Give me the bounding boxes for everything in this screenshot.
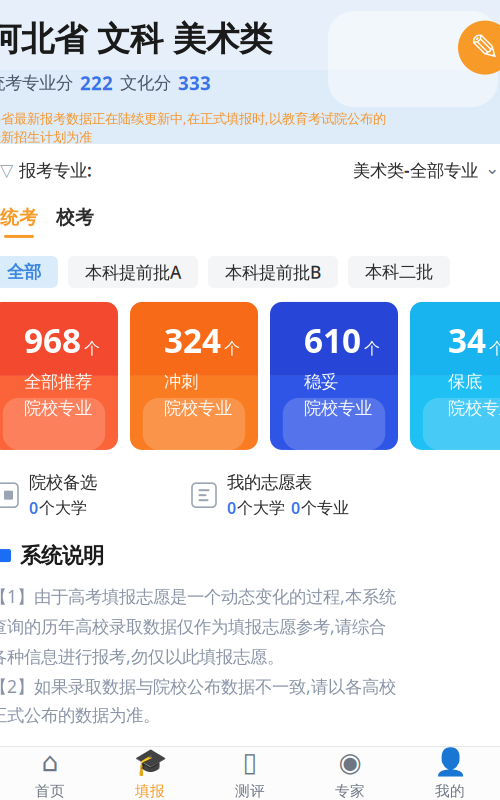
button[interactable]: 我的志愿表 [192,472,432,518]
staticText: 全部推荐 [24,371,92,392]
staticText: ⌂ [41,747,58,777]
staticText: 测评 [235,782,265,800]
staticText: 本科提前批A [85,260,181,283]
staticText: 系统说明 [20,542,104,569]
staticText: 本科二批 [365,261,433,283]
staticText: 院校备选 [29,472,97,493]
button[interactable]: 统考 [0,206,38,238]
button[interactable]: 全部 [0,256,58,288]
staticText: ◉ [338,747,361,777]
button[interactable]: 👤 [400,748,500,798]
button[interactable]: ⌂ [0,748,100,798]
staticText: 个 [84,338,100,358]
staticText: 我的 [435,782,465,800]
staticText: 统考 [0,206,38,229]
staticText: 968 [24,318,81,362]
staticText: 个 [224,338,240,358]
button[interactable]: 校考 [56,206,94,238]
staticText: 222 [80,70,113,95]
button[interactable]: 610 [270,302,398,450]
staticText: 专家 [335,782,365,800]
staticText: 333 [178,70,211,95]
button[interactable]: ▽ [0,144,500,196]
button[interactable]: ◉ [300,748,400,798]
staticText: 稳妥 [304,371,338,392]
staticText: 首页 [35,782,65,800]
staticText: 全部 [7,261,41,283]
staticText: 河北省 文科 美术类 [0,19,272,59]
staticText: 【1】由于高考填报志愿是一个动态变化的过程,本系统 [0,585,396,608]
staticText: 最新招生计划为准 [0,129,92,145]
button[interactable]: 编辑 [458,21,500,75]
staticText: 报考专业: [19,158,92,181]
staticText: 各省最新报考数据正在陆续更新中,在正式填报时,以教育考试院公布的 [0,109,386,127]
button[interactable]: 🎓 [100,748,200,798]
staticText: 正式公布的数据为准。 [0,705,160,726]
staticText: 🎓 [133,747,166,777]
staticText: 各种信息进行报考,勿仅以此填报志愿。 [0,645,284,668]
staticText: ▯ [242,747,257,777]
staticText: 个大学 [39,498,87,518]
staticText: 院校专业 [164,397,232,419]
staticText: ⌄ [485,158,500,178]
staticText: 院校专业 [448,397,500,419]
staticText: 👤 [433,747,466,777]
button[interactable]: 院校备选 [0,472,192,518]
button[interactable]: 本科提前批A [68,256,198,288]
staticText: ✎ [470,27,500,68]
staticText: 填报 [135,782,165,800]
button[interactable]: 34 [410,302,500,450]
staticText: 文化分 [120,72,171,94]
staticText: 0 [29,497,38,518]
staticText: 610 [304,318,361,362]
staticText: 保底 [448,371,482,392]
staticText: 院校专业 [304,397,372,419]
staticText: 我的志愿表 [227,472,312,493]
staticText: 个 [489,338,500,358]
staticText: 【2】如果录取数据与院校公布数据不一致,请以各高校 [0,675,396,698]
staticText: 校考 [56,206,94,229]
staticText: 324 [164,318,221,362]
staticText: 0 [227,497,236,518]
staticText: 0 [291,497,300,518]
staticText: 冲刺 [164,371,198,392]
staticText: 院校专业 [24,397,92,419]
staticText: 个大学 [237,498,290,518]
staticText: 34 [448,318,486,362]
staticText: 个专业 [301,498,349,518]
staticText: 美术类-全部专业 [353,158,478,181]
staticText: ▽ [0,160,13,180]
button[interactable]: 324 [130,302,258,450]
button[interactable]: 本科二批 [348,256,450,288]
button[interactable]: 本科提前批B [208,256,338,288]
staticText: 本科提前批B [225,260,321,283]
button[interactable]: 968 [0,302,118,450]
button[interactable]: ▯ [200,748,300,798]
staticText: 查询的历年高校录取数据仅作为填报志愿参考,请综合 [0,615,386,638]
staticText: 统考专业分 [0,72,73,94]
staticText: 个 [364,338,380,358]
